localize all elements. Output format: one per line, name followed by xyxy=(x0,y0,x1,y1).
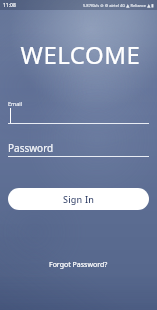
button[interactable]: Password xyxy=(8,141,149,157)
staticText: Email xyxy=(8,100,23,107)
staticText: WELCOME xyxy=(4,38,157,71)
staticText: 11:08 xyxy=(3,2,16,9)
staticText: Password xyxy=(8,141,54,155)
staticText: Sign In xyxy=(63,193,95,205)
button[interactable]: Forgot Password? xyxy=(45,256,112,274)
button[interactable]: Email xyxy=(8,100,149,124)
staticText: Forgot Password? xyxy=(49,260,108,270)
button[interactable]: Sign In xyxy=(8,188,149,210)
staticText: 5.87Kb/s ⊘ ⚙ airtel 4G ▲ Reliance ▲ ▮ xyxy=(83,3,154,8)
